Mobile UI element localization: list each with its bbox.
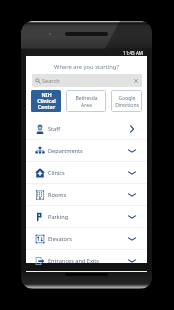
button[interactable]: Elevators: [26, 228, 147, 249]
staticText: Google Directions: [115, 95, 139, 108]
staticText: Search: [42, 77, 60, 85]
button[interactable]: Search: [32, 74, 142, 87]
staticText: 11:45 AM: [123, 50, 144, 56]
button[interactable]: Rooms: [26, 184, 147, 205]
staticText: Where are you starting?: [54, 63, 119, 71]
staticText: Rooms: [48, 191, 67, 199]
staticText: Parking: [48, 213, 69, 221]
staticText: Staff: [48, 125, 61, 133]
staticText: Clinics: [48, 169, 65, 177]
staticText: NIH Clinical Center: [37, 91, 56, 111]
staticText: Departments: [48, 147, 83, 155]
button[interactable]: NIH Clinical Center: [31, 90, 61, 112]
button[interactable]: Clinics: [26, 162, 147, 183]
staticText: Bethesda Area: [75, 95, 98, 108]
button[interactable]: Google Directions: [111, 90, 142, 112]
button[interactable]: Entrances and Exits: [26, 250, 147, 271]
button[interactable]: Departments: [26, 140, 147, 161]
other: Clear search: [134, 79, 138, 83]
staticText: Entrances and Exits: [48, 257, 100, 265]
staticText: Elevators: [48, 235, 72, 243]
button[interactable]: Bethesda Area: [66, 90, 106, 112]
button[interactable]: Parking: [26, 206, 147, 227]
button[interactable]: Staff: [26, 118, 147, 139]
